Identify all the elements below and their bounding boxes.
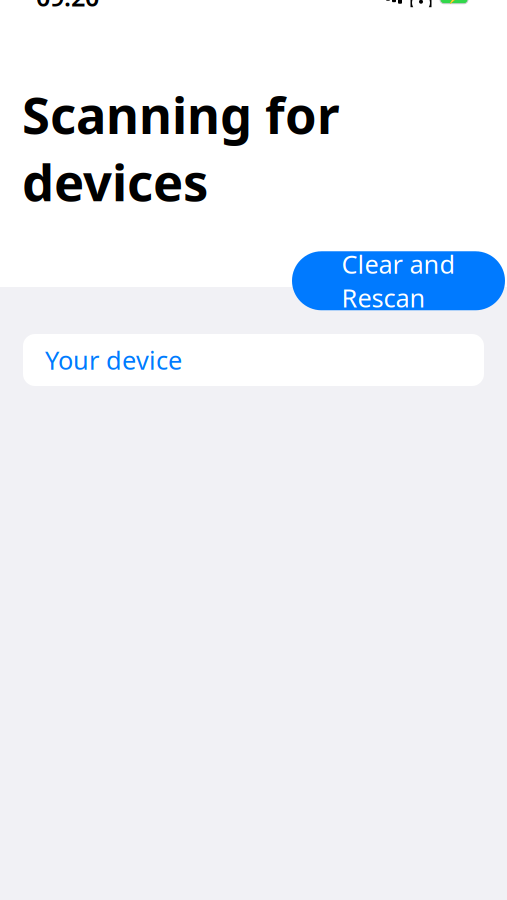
staticText: 09:20 <box>36 0 99 13</box>
button[interactable]: Your device <box>23 334 484 386</box>
button[interactable]: Clear and Rescan <box>292 251 505 310</box>
staticText: Scanning for devices <box>22 81 340 215</box>
staticText: ⚡ <box>445 0 462 4</box>
staticText: Clear and Rescan <box>341 247 455 314</box>
staticText: Your device <box>45 343 182 377</box>
